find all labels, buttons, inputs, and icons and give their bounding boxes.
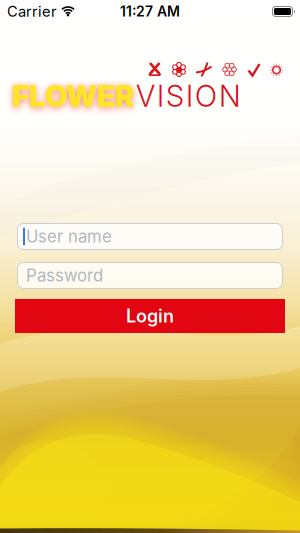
staticText: FLOWER — [12, 78, 135, 114]
staticText: 11:27 AM — [120, 3, 180, 20]
staticText: Login — [126, 305, 174, 327]
button[interactable]: User name — [17, 223, 283, 250]
staticText: V I S I O N — [136, 78, 241, 114]
staticText: User name — [26, 226, 112, 247]
staticText: Password — [26, 265, 103, 286]
button[interactable]: Password — [17, 262, 283, 289]
button[interactable]: Login — [15, 299, 285, 333]
staticText: Carrier — [7, 3, 57, 20]
